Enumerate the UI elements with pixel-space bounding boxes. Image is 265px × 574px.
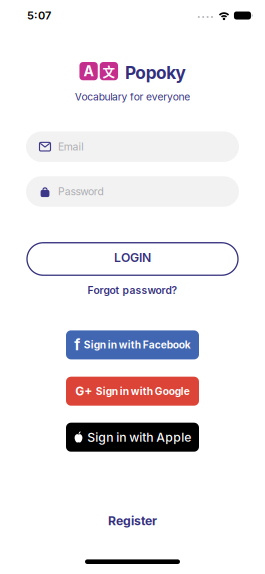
staticText: f <box>74 336 80 354</box>
staticText: Register <box>108 514 157 528</box>
button[interactable]: Email <box>26 131 239 162</box>
button[interactable]: f <box>66 330 199 359</box>
button[interactable]: Register <box>108 514 157 528</box>
staticText: G+ <box>75 384 92 398</box>
staticText: Forgot password? <box>87 284 177 296</box>
staticText: Popoky <box>125 62 186 83</box>
staticText: Email <box>58 141 84 153</box>
staticText: Sign in with Facebook <box>84 339 191 351</box>
staticText: Password <box>58 185 104 198</box>
staticText: Vocabulary for everyone <box>75 91 190 103</box>
staticText: 文 <box>102 62 115 80</box>
staticText: 5:07 <box>27 9 51 22</box>
staticText: A <box>84 63 94 79</box>
button[interactable]: Forgot password? <box>87 284 177 296</box>
button[interactable]: Sign in with Apple <box>66 423 199 452</box>
button[interactable]: Password <box>26 176 239 207</box>
staticText: LOGIN <box>114 250 151 265</box>
staticText: Sign in with Apple <box>87 430 191 444</box>
staticText: Sign in with Google <box>96 385 190 397</box>
button[interactable]: LOGIN <box>27 243 238 275</box>
button[interactable]: G+ <box>66 377 199 406</box>
